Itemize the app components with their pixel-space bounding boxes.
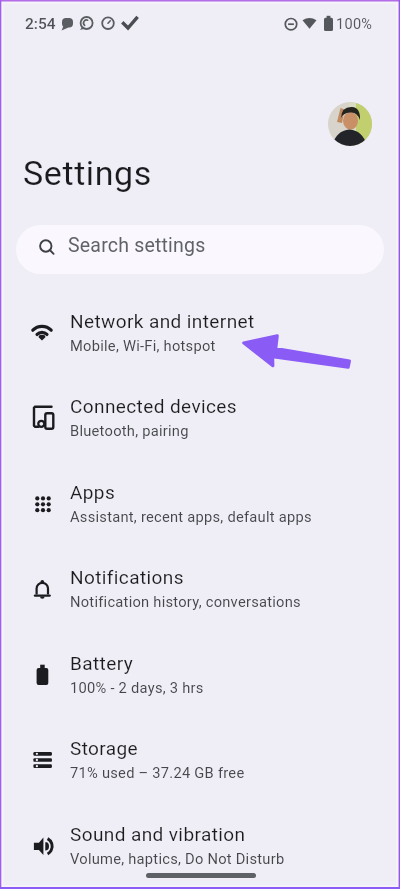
staticText: 71% used – 37.24 GB free xyxy=(70,764,245,781)
staticText: Battery xyxy=(70,652,134,674)
staticText: Storage xyxy=(70,737,139,759)
staticText: 100% xyxy=(336,16,373,33)
button[interactable]: Network and internet xyxy=(0,295,400,380)
staticText: 100% - 2 days, 3 hrs xyxy=(70,679,204,696)
staticText: Notification history, conversations xyxy=(70,593,301,610)
staticText: Mobile, Wi-Fi, hotspot xyxy=(70,337,216,354)
button[interactable]: Notifications xyxy=(0,551,400,636)
staticText: 2:54 xyxy=(25,15,56,33)
button[interactable]: Sound and vibration xyxy=(0,808,400,889)
button[interactable]: Storage xyxy=(0,722,400,807)
button[interactable]: Apps xyxy=(0,466,400,551)
staticText: Settings xyxy=(23,153,152,193)
staticText: Bluetooth, pairing xyxy=(70,422,189,439)
button[interactable]: Search settings xyxy=(16,225,384,274)
staticText: Network and internet xyxy=(70,310,255,332)
button[interactable]: Battery xyxy=(0,637,400,722)
button[interactable] xyxy=(328,102,372,146)
staticText: Volume, haptics, Do Not Disturb xyxy=(70,850,285,867)
staticText: Assistant, recent apps, default apps xyxy=(70,508,312,525)
staticText: Apps xyxy=(70,481,116,503)
button[interactable]: Connected devices xyxy=(0,380,400,465)
staticText: Search settings xyxy=(68,234,206,257)
staticText: Notifications xyxy=(70,566,184,588)
staticText: Connected devices xyxy=(70,395,238,417)
staticText: Sound and vibration xyxy=(70,823,246,845)
